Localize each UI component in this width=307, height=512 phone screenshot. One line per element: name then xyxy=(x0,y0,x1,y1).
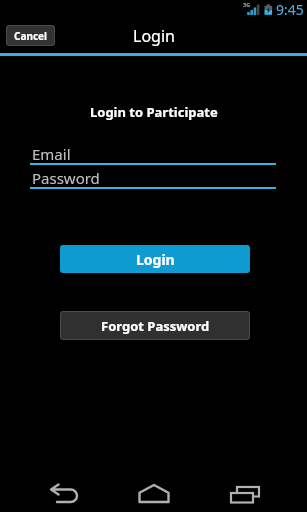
button[interactable]: Cancel xyxy=(6,25,55,46)
button[interactable]: Email xyxy=(30,144,276,165)
button[interactable] xyxy=(44,478,84,508)
staticText: Cancel xyxy=(14,29,48,43)
button[interactable]: Forgot Password xyxy=(60,311,250,340)
staticText: Login xyxy=(136,250,175,269)
staticText: Forgot Password xyxy=(101,317,210,335)
staticText: Password xyxy=(32,168,100,188)
button[interactable]: Login xyxy=(60,245,250,273)
staticText: Login to Participate xyxy=(90,103,218,121)
staticText: Email xyxy=(32,144,71,164)
button[interactable]: Password xyxy=(30,168,276,189)
staticText: Login xyxy=(133,25,175,47)
staticText: 9:45 xyxy=(276,0,304,19)
staticText: 3G xyxy=(243,1,251,8)
button[interactable] xyxy=(225,478,265,508)
button[interactable] xyxy=(134,478,174,508)
